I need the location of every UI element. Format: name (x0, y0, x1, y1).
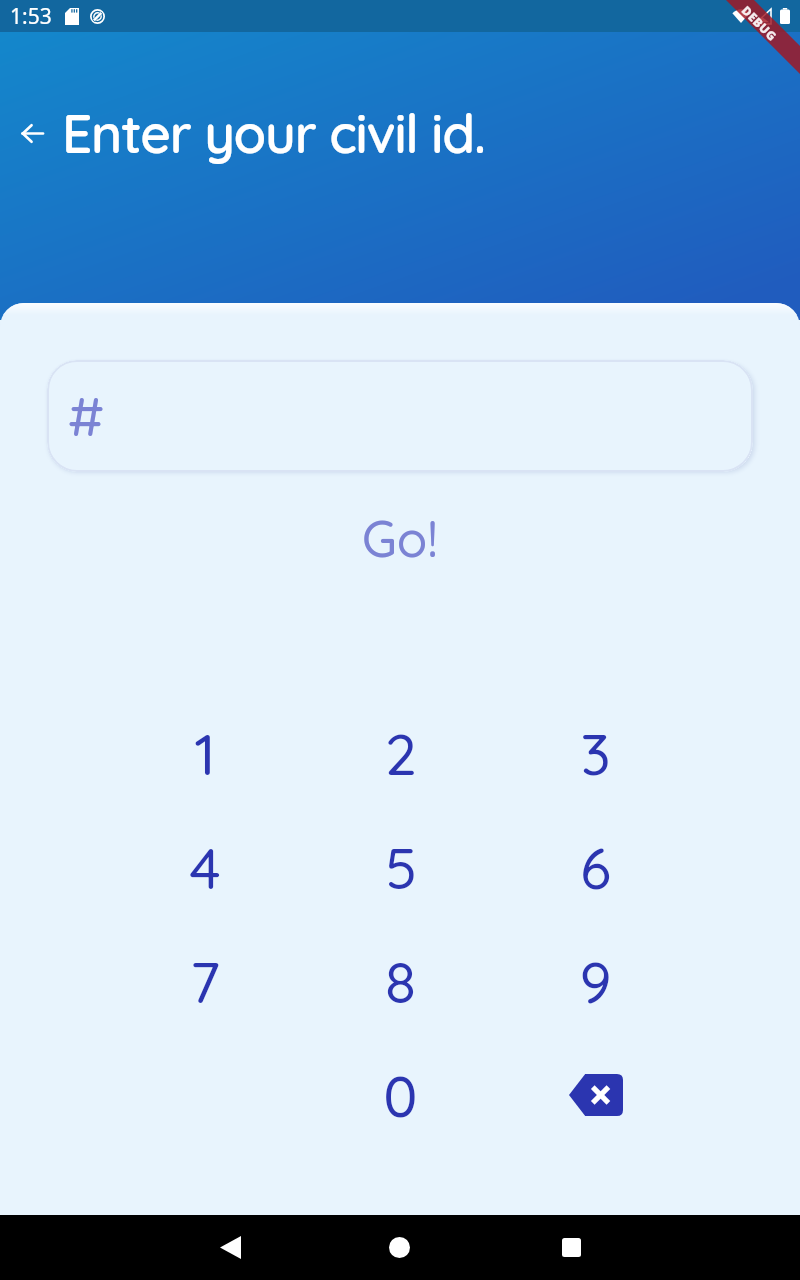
button[interactable]: 2 (303, 696, 498, 810)
button[interactable]: 1 (107, 696, 303, 810)
staticText: # (68, 382, 105, 450)
button[interactable]: Home (364, 1215, 434, 1280)
button[interactable]: 9 (498, 924, 693, 1038)
staticText: 4 (189, 832, 221, 903)
button[interactable]: Back (5, 106, 59, 160)
button[interactable]: 6 (498, 810, 693, 924)
staticText: Enter your civil id. (62, 100, 485, 166)
staticText: 2 (385, 718, 417, 789)
staticText: 7 (190, 946, 220, 1017)
staticText: 9 (579, 946, 612, 1017)
staticText: Go! (362, 507, 438, 570)
button[interactable]: # (47, 360, 753, 472)
staticText: 1:53 (10, 2, 52, 31)
staticText: 8 (385, 946, 416, 1017)
button[interactable]: Go! (346, 499, 454, 578)
staticText: 0 (383, 1060, 418, 1131)
button[interactable]: 5 (303, 810, 498, 924)
button[interactable]: 0 (303, 1038, 498, 1152)
button[interactable]: 7 (107, 924, 303, 1038)
staticText: 3 (580, 718, 611, 789)
staticText: 1 (194, 718, 216, 789)
button[interactable]: 3 (498, 696, 693, 810)
button[interactable]: 4 (107, 810, 303, 924)
staticText: 5 (385, 832, 417, 903)
staticText: DEBUG (739, 2, 780, 44)
staticText: 6 (580, 832, 611, 903)
button[interactable]: Recent apps (536, 1215, 606, 1280)
button[interactable]: 8 (303, 924, 498, 1038)
button[interactable]: Backspace (498, 1038, 693, 1152)
button[interactable]: Back (195, 1215, 265, 1280)
